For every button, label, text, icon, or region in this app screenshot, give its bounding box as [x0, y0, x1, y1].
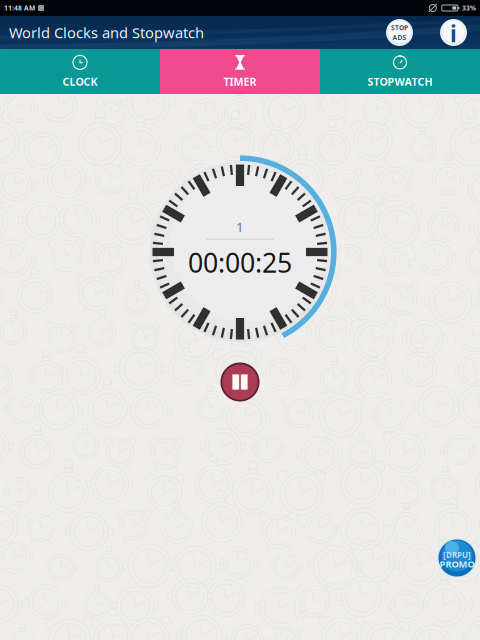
button[interactable]: CLOCK [0, 49, 160, 94]
staticText: [DRPU] [443, 550, 471, 560]
button[interactable]: Info [438, 17, 469, 48]
staticText: 33% [462, 4, 476, 12]
button[interactable]: DRPU Promo [437, 538, 477, 578]
staticText: World Clocks and Stopwatch [9, 23, 204, 42]
staticText: i [450, 18, 457, 48]
button[interactable]: TIMER [160, 49, 320, 94]
button[interactable]: STOPWATCH [320, 49, 480, 94]
button[interactable]: Pause [218, 360, 262, 404]
staticText: PROMO [439, 558, 474, 570]
button[interactable]: Stop Ads [384, 17, 415, 48]
staticText: STOPWATCH [367, 74, 432, 89]
staticText: CLOCK [62, 74, 97, 89]
staticText: TIMER [223, 74, 256, 89]
staticText: 1 [236, 218, 244, 236]
staticText: 00:00:25 [188, 245, 292, 280]
staticText: 11:48 AM [4, 4, 35, 12]
staticText: ADS [392, 33, 406, 42]
staticText: STOP [391, 23, 408, 32]
